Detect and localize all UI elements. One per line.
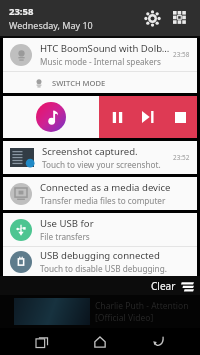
- button[interactable]: [3, 96, 99, 138]
- button[interactable]: Screenshot captured.: [3, 141, 197, 174]
- staticText: Transfer media files to computer: [40, 195, 166, 206]
- staticText: Touch to disable USB debugging.: [40, 263, 167, 274]
- staticText: Music mode - Internal speakers: [40, 56, 161, 67]
- staticText: Connected as a media device: [40, 181, 171, 194]
- button[interactable]: Home: [83, 328, 117, 355]
- staticText: File transfers: [40, 231, 90, 242]
- staticText: Charlie Puth - Attention: [95, 300, 189, 312]
- button[interactable]: HTC BoomSound with Dolby Au..: [3, 38, 197, 71]
- staticText: Screenshot captured.: [42, 145, 138, 158]
- staticText: [Official Video]: [95, 312, 154, 324]
- button[interactable]: Next track: [134, 103, 162, 131]
- button[interactable]: Use USB for: [3, 213, 197, 246]
- staticText: SWITCH MODE: [52, 78, 106, 88]
- staticText: USB debugging connected: [40, 249, 160, 262]
- staticText: HTC BoomSound with Dolby Au..: [40, 42, 170, 55]
- staticText: 23:58: [9, 5, 34, 18]
- staticText: Use USB for: [40, 217, 94, 230]
- button[interactable]: SWITCH MODE: [3, 72, 197, 93]
- button[interactable]: Clear: [145, 279, 200, 293]
- button[interactable]: Back: [142, 328, 176, 355]
- staticText: Touch to view your screenshot.: [42, 159, 161, 170]
- staticText: Clear: [151, 279, 176, 293]
- button[interactable]: Edit quick settings: [166, 4, 194, 32]
- staticText: Wednesday, May 10: [9, 19, 93, 31]
- button[interactable]: Settings: [138, 4, 166, 32]
- staticText: 23:58: [173, 50, 190, 59]
- button[interactable]: Connected as a media device: [3, 177, 197, 210]
- staticText: 23:52: [173, 153, 190, 162]
- button[interactable]: Pause: [103, 103, 131, 131]
- button[interactable]: Recent apps: [25, 328, 59, 355]
- button[interactable]: USB debugging connected: [3, 247, 197, 276]
- button[interactable]: Stop: [166, 103, 194, 131]
